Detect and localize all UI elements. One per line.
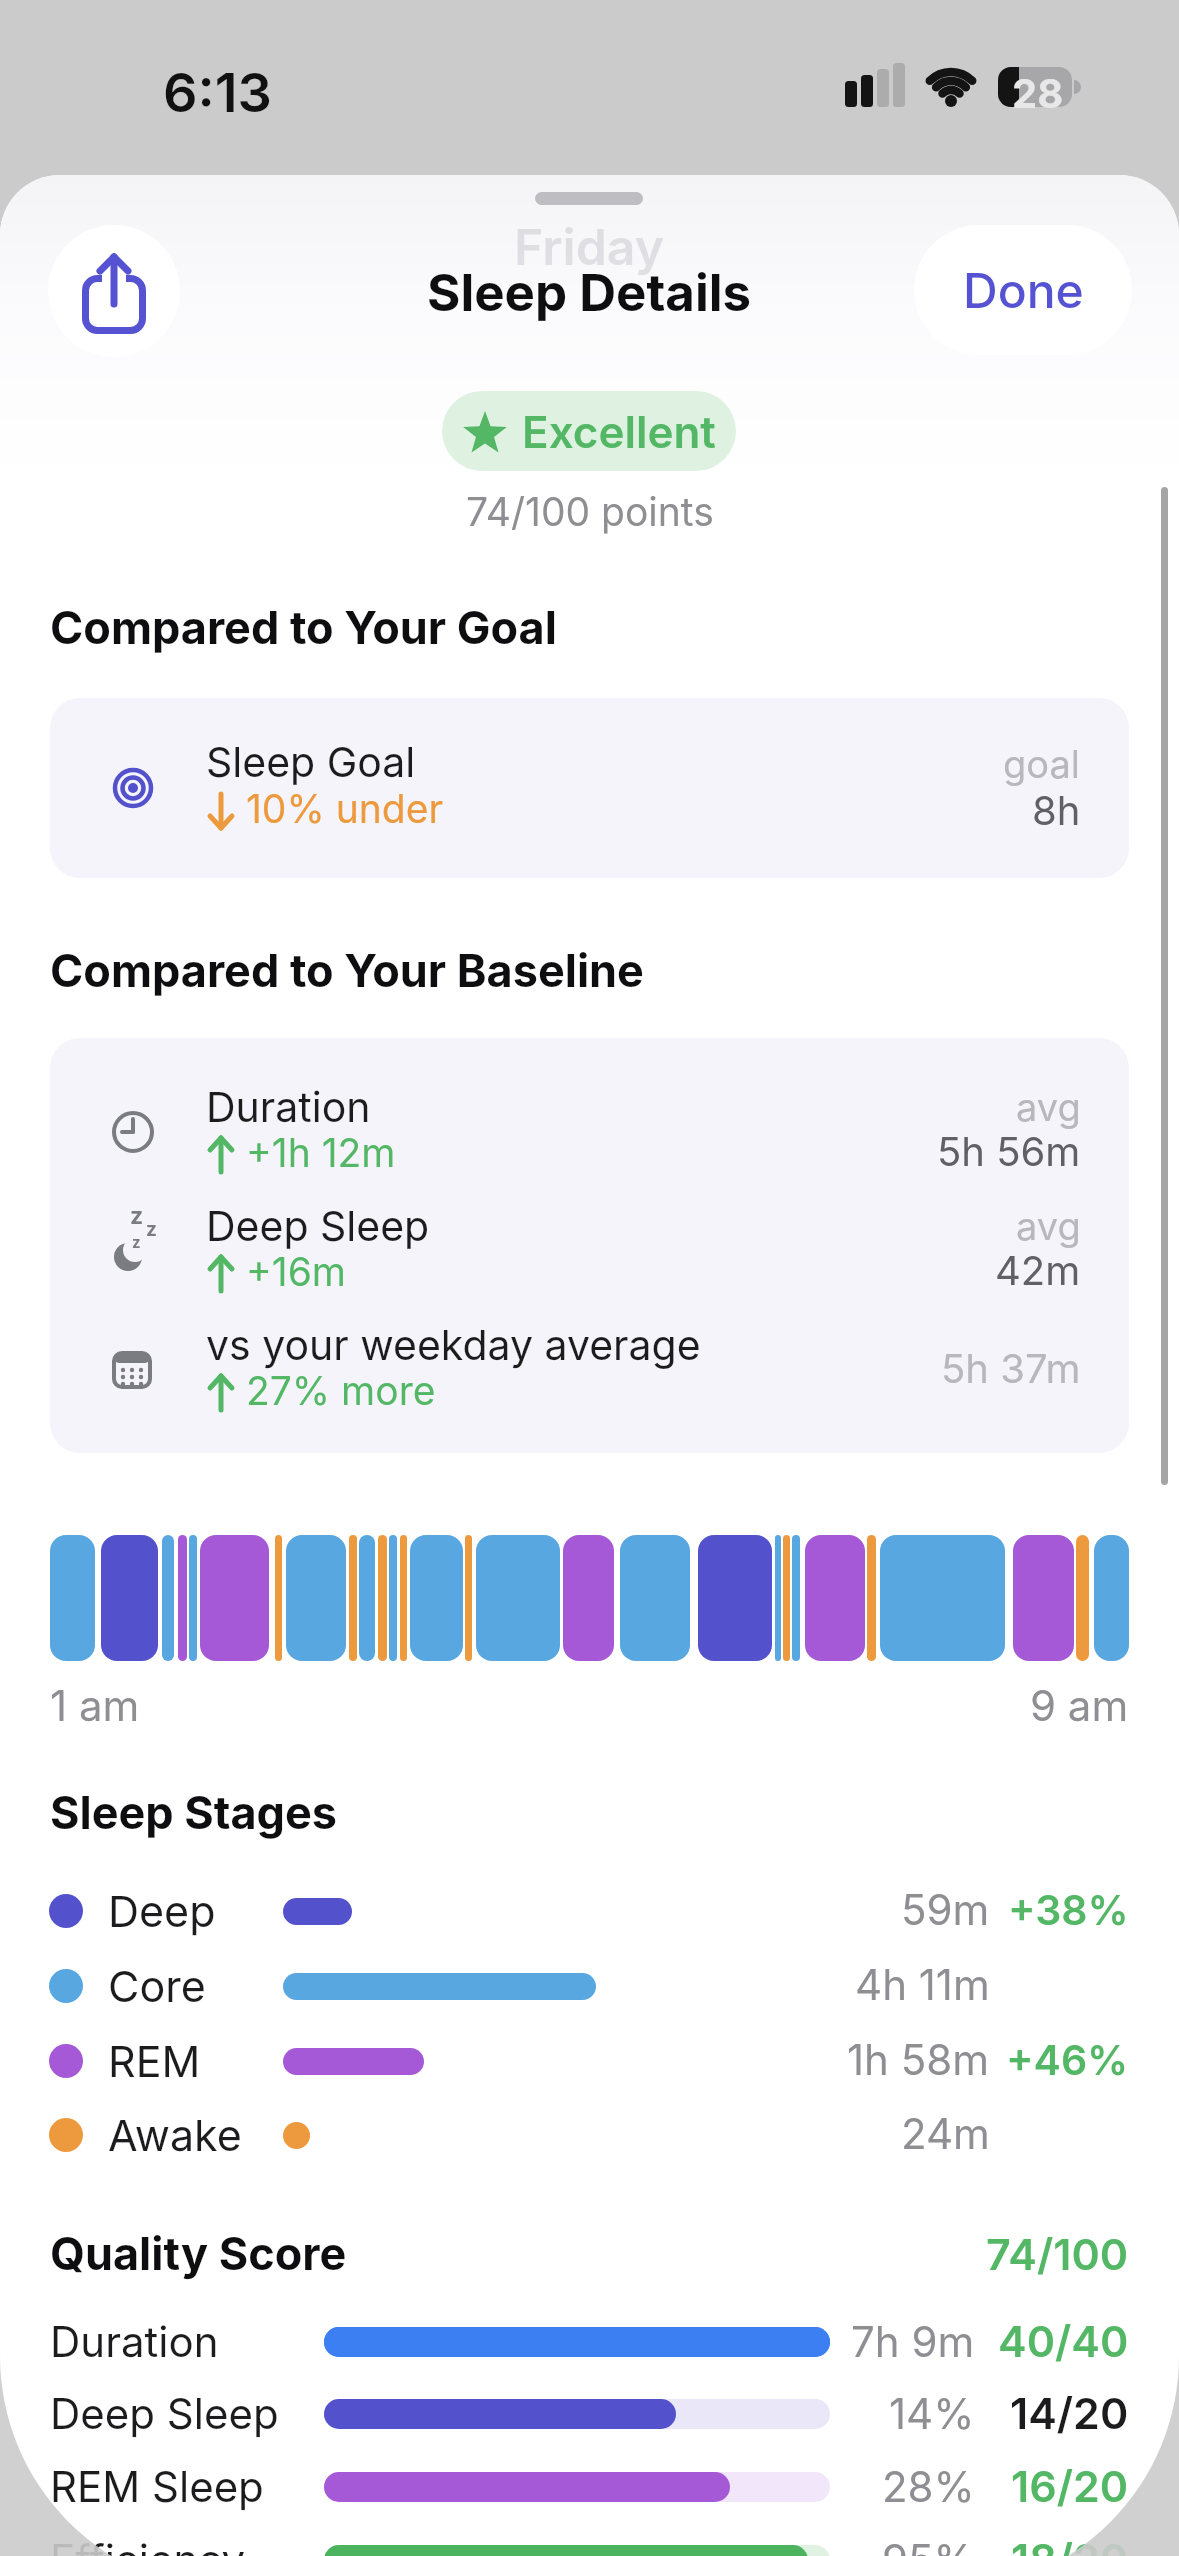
staticText: 42m: [995, 1246, 1081, 1294]
staticText: Awake: [108, 2109, 242, 2161]
staticText: Efficiency: [50, 2534, 246, 2556]
staticText: Duration: [206, 1082, 371, 1132]
staticText: 5h 37m: [941, 1344, 1081, 1392]
staticText: Quality Score: [50, 2226, 347, 2280]
button[interactable]: Done: [914, 225, 1132, 355]
staticText: 6:13: [163, 60, 272, 125]
staticText: 5h 56m: [937, 1127, 1081, 1175]
staticText: +38%: [1008, 1885, 1129, 1935]
staticText: avg: [1016, 1084, 1081, 1130]
staticText: Done: [963, 261, 1084, 319]
staticText: goal: [1003, 741, 1081, 787]
staticText: +1h 12m: [246, 1129, 396, 1176]
staticText: 1 am: [50, 1680, 140, 1731]
staticText: 28: [1012, 69, 1064, 117]
staticText: 24m: [901, 2108, 990, 2159]
staticText: 14%: [889, 2388, 975, 2439]
staticText: Deep Sleep: [50, 2388, 279, 2439]
staticText: Compared to Your Baseline: [50, 943, 644, 997]
staticText: 1h 58m: [847, 2034, 990, 2085]
staticText: 10% under: [246, 785, 444, 832]
staticText: z: [132, 1233, 141, 1251]
staticText: Excellent: [522, 405, 716, 458]
staticText: Deep: [108, 1885, 216, 1937]
staticText: 74/100 points: [466, 488, 714, 535]
staticText: 8h: [1032, 786, 1081, 834]
staticText: 7h 9m: [851, 2316, 975, 2367]
staticText: Sleep Goal: [206, 737, 416, 787]
staticText: 14/20: [1010, 2387, 1129, 2439]
staticText: 18/20: [1011, 2533, 1129, 2556]
staticText: vs your weekday average: [206, 1320, 701, 1370]
staticText: 9 am: [1030, 1680, 1129, 1731]
staticText: z: [146, 1218, 157, 1241]
staticText: 4h 11m: [855, 1959, 990, 2010]
button[interactable]: Excellent: [442, 391, 736, 471]
staticText: +16m: [246, 1248, 347, 1295]
staticText: 40/40: [998, 2315, 1129, 2367]
staticText: 74/100: [986, 2228, 1129, 2280]
staticText: 95%: [882, 2534, 975, 2556]
staticText: Deep Sleep: [206, 1201, 430, 1251]
staticText: 28%: [882, 2461, 975, 2512]
button[interactable]: [48, 225, 180, 357]
staticText: z: [130, 1202, 144, 1230]
staticText: Core: [108, 1960, 206, 2012]
staticText: +46%: [1006, 2035, 1129, 2085]
staticText: Compared to Your Goal: [50, 600, 557, 654]
staticText: Friday: [514, 217, 665, 277]
staticText: REM: [108, 2035, 201, 2087]
staticText: REM Sleep: [50, 2461, 264, 2512]
staticText: 27% more: [246, 1367, 436, 1414]
staticText: avg: [1016, 1203, 1081, 1249]
staticText: Sleep Stages: [50, 1785, 338, 1839]
staticText: Duration: [50, 2316, 219, 2367]
staticText: Sleep Details: [427, 262, 752, 324]
staticText: 16/20: [1011, 2460, 1129, 2512]
staticText: 59m: [901, 1884, 990, 1935]
